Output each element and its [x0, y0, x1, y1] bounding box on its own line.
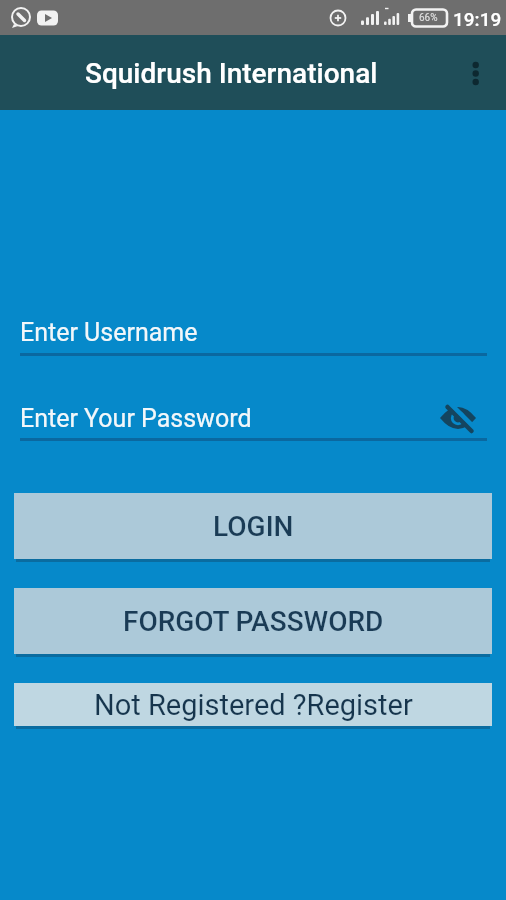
staticText: Not Registered ?Register: [94, 688, 413, 722]
staticText: Squidrush International: [85, 57, 378, 90]
staticText: 19:19: [453, 8, 502, 30]
button[interactable]: FORGOT PASSWORD: [14, 588, 492, 654]
button[interactable]: Not Registered ?Register: [14, 683, 492, 726]
button[interactable]: LOGIN: [14, 493, 492, 559]
staticText: Enter Your Password: [20, 404, 252, 433]
staticText: 66%: [419, 12, 438, 24]
button[interactable]: [438, 400, 478, 436]
staticText: LOGIN: [213, 510, 294, 543]
staticText: Enter Username: [20, 318, 198, 347]
staticText: FORGOT PASSWORD: [123, 605, 384, 638]
button[interactable]: [460, 58, 492, 90]
